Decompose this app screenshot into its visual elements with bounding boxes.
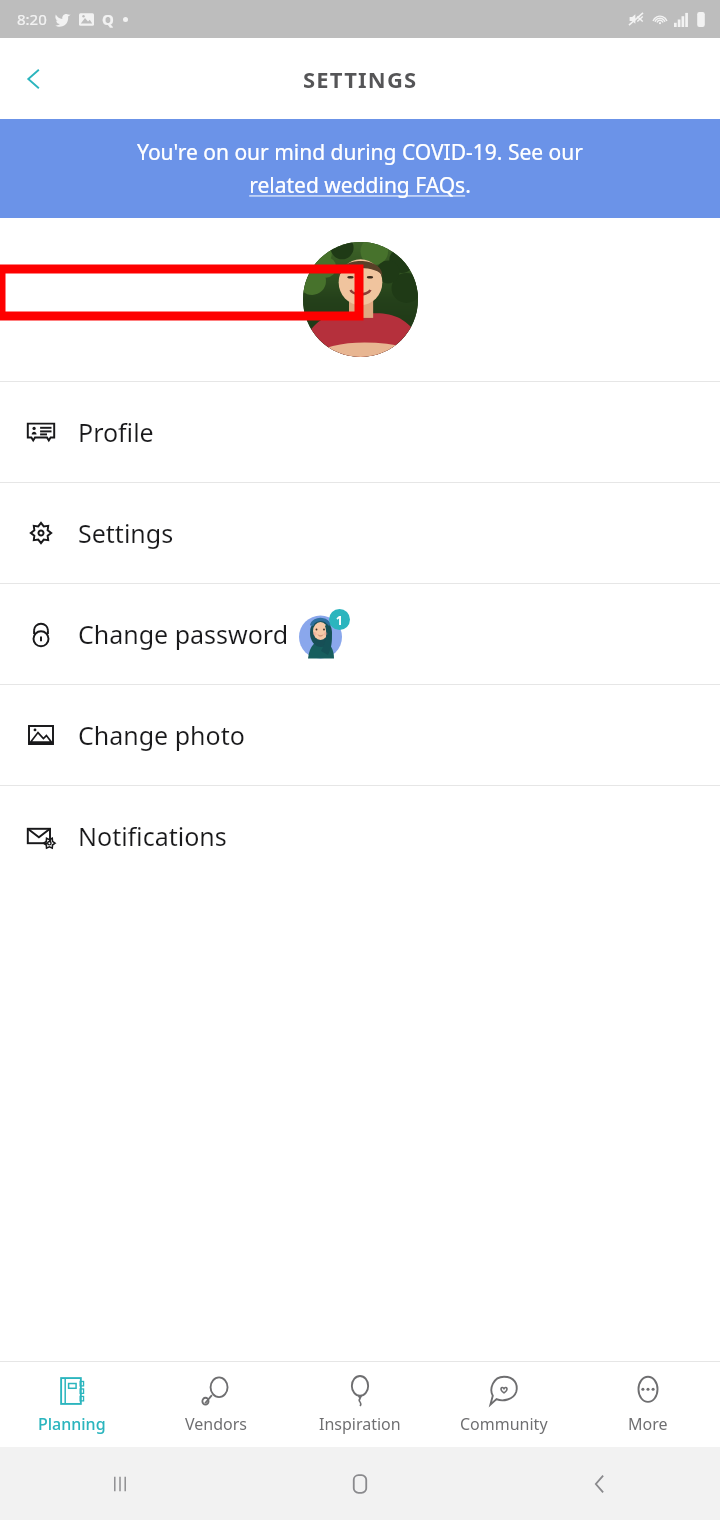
button[interactable]: You're on our mind during COVID-19. See … bbox=[0, 119, 720, 218]
button[interactable]: Back bbox=[480, 1447, 720, 1520]
button[interactable]: Back bbox=[6, 51, 62, 107]
button[interactable]: Inspiration bbox=[288, 1362, 432, 1447]
button[interactable]: Recents bbox=[0, 1447, 240, 1520]
staticText: Profile bbox=[78, 415, 154, 449]
staticText: Planning bbox=[38, 1413, 106, 1435]
staticText: Community bbox=[460, 1413, 548, 1435]
staticText: You're on our mind during COVID-19. See … bbox=[137, 138, 583, 167]
staticText: SETTINGS bbox=[303, 64, 418, 94]
button[interactable] bbox=[303, 242, 418, 357]
staticText: related wedding FAQs. bbox=[249, 171, 471, 200]
staticText: Notifications bbox=[78, 819, 227, 853]
button[interactable]: Change photo bbox=[0, 685, 720, 785]
staticText: Inspiration bbox=[319, 1413, 401, 1435]
staticText: Settings bbox=[78, 516, 174, 550]
button[interactable]: Community bbox=[432, 1362, 576, 1447]
button[interactable]: More bbox=[576, 1362, 720, 1447]
button[interactable]: Home bbox=[240, 1447, 480, 1520]
button[interactable]: Planning bbox=[0, 1362, 144, 1447]
button[interactable]: Profile bbox=[0, 382, 720, 482]
staticText: Change password bbox=[78, 617, 289, 651]
staticText: 1 bbox=[336, 612, 343, 628]
staticText: More bbox=[628, 1413, 668, 1435]
staticText: Vendors bbox=[185, 1413, 247, 1435]
staticText: 8:20 bbox=[17, 9, 47, 29]
button[interactable]: Notifications bbox=[0, 786, 720, 886]
button[interactable]: Settings bbox=[0, 483, 720, 583]
staticText: Change photo bbox=[78, 718, 245, 752]
staticText: Q bbox=[102, 9, 114, 29]
button[interactable]: Chat assistant bbox=[298, 611, 348, 661]
button[interactable]: Vendors bbox=[144, 1362, 288, 1447]
button[interactable]: Change password bbox=[0, 584, 720, 684]
